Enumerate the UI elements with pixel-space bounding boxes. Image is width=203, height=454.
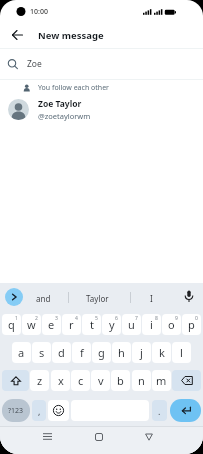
button[interactable]: Zoe Taylor xyxy=(8,96,203,123)
staticText: New message xyxy=(38,29,104,42)
button[interactable]: w xyxy=(22,314,41,335)
staticText: Zoe Taylor xyxy=(38,98,82,110)
button[interactable]: Taylor xyxy=(86,293,109,304)
button[interactable]: m xyxy=(152,370,171,391)
staticText: o xyxy=(168,317,175,332)
staticText: 1 xyxy=(15,315,18,322)
staticText: l xyxy=(180,345,183,360)
button[interactable]: i xyxy=(142,314,161,335)
button[interactable] xyxy=(95,433,103,441)
button[interactable] xyxy=(5,288,23,306)
staticText: a xyxy=(18,345,25,360)
staticText: h xyxy=(118,345,125,360)
button[interactable]: j xyxy=(132,342,151,363)
button[interactable]: y xyxy=(102,314,121,335)
button[interactable] xyxy=(172,370,201,391)
staticText: 2 xyxy=(35,315,38,322)
button[interactable]: I xyxy=(150,293,153,304)
button[interactable]: l xyxy=(172,342,191,363)
button[interactable]: o xyxy=(162,314,181,335)
button[interactable]: n xyxy=(132,370,151,391)
staticText: g xyxy=(98,345,105,360)
button[interactable]: ?123 xyxy=(2,399,30,422)
button[interactable]: Zoe xyxy=(7,49,203,79)
staticText: You follow each other xyxy=(38,83,109,93)
button[interactable]: b xyxy=(111,370,130,391)
staticText: 5 xyxy=(95,315,98,322)
button[interactable]: k xyxy=(152,342,171,363)
button[interactable]: c xyxy=(71,370,90,391)
staticText: 6 xyxy=(115,315,118,322)
button[interactable]: q xyxy=(2,314,21,335)
button[interactable]: p xyxy=(182,314,201,335)
staticText: s xyxy=(39,345,45,360)
staticText: 0 xyxy=(195,315,198,322)
staticText: r xyxy=(69,317,74,332)
staticText: x xyxy=(58,373,64,388)
button[interactable]: v xyxy=(91,370,110,391)
staticText: j xyxy=(140,345,143,360)
button[interactable] xyxy=(48,400,69,421)
staticText: f xyxy=(80,345,84,360)
button[interactable] xyxy=(43,433,52,440)
staticText: 8 xyxy=(155,315,158,322)
staticText: 3 xyxy=(55,315,58,322)
staticText: i xyxy=(150,317,153,332)
staticText: n xyxy=(138,373,145,388)
staticText: d xyxy=(58,345,65,360)
button[interactable]: g xyxy=(92,342,111,363)
button[interactable]: r xyxy=(62,314,81,335)
button[interactable]: d xyxy=(52,342,71,363)
staticText: ?123 xyxy=(8,406,24,416)
button[interactable]: and xyxy=(36,293,51,304)
button[interactable] xyxy=(10,27,26,43)
staticText: k xyxy=(159,345,165,360)
staticText: c xyxy=(78,373,84,388)
button[interactable] xyxy=(2,370,29,391)
staticText: b xyxy=(117,373,124,388)
staticText: m xyxy=(156,373,167,388)
staticText: w xyxy=(27,317,36,332)
button[interactable]: h xyxy=(112,342,131,363)
button[interactable] xyxy=(170,399,201,422)
staticText: p xyxy=(188,317,195,332)
button[interactable]: t xyxy=(82,314,101,335)
button[interactable]: z xyxy=(30,370,49,391)
staticText: q xyxy=(8,317,15,332)
staticText: v xyxy=(98,373,104,388)
staticText: z xyxy=(37,373,43,388)
staticText: 9 xyxy=(175,315,178,322)
staticText: e xyxy=(48,317,55,332)
staticText: y xyxy=(109,317,115,332)
staticText: 10:00 xyxy=(30,7,48,17)
button[interactable] xyxy=(184,290,194,305)
staticText: @zoetaylorwm xyxy=(38,111,91,121)
staticText: t xyxy=(90,317,94,332)
staticText: Zoe xyxy=(27,58,42,70)
staticText: 7 xyxy=(135,315,138,322)
button[interactable] xyxy=(145,433,153,441)
button[interactable]: a xyxy=(12,342,31,363)
button[interactable]: u xyxy=(122,314,141,335)
button[interactable]: s xyxy=(32,342,51,363)
staticText: 4 xyxy=(75,315,78,322)
staticText: . xyxy=(158,405,161,417)
button[interactable]: , xyxy=(32,400,46,421)
button[interactable]: x xyxy=(51,370,70,391)
staticText: , xyxy=(38,405,41,417)
button[interactable]: f xyxy=(72,342,91,363)
button[interactable]: e xyxy=(42,314,61,335)
button[interactable]: . xyxy=(152,400,167,421)
staticText: u xyxy=(128,317,135,332)
